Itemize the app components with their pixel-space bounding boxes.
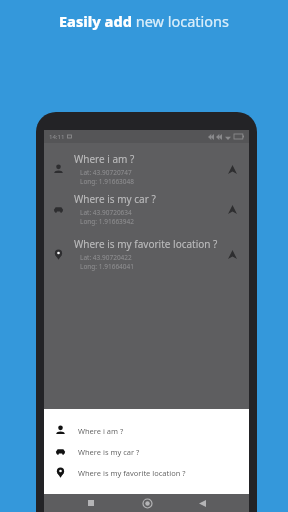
button[interactable]: Person (44, 149, 249, 189)
button[interactable]: Place (44, 229, 249, 279)
staticText: Long: 1.91663048 (80, 177, 134, 186)
other: Place (53, 249, 64, 260)
button[interactable]: Recent apps (83, 495, 99, 511)
button[interactable]: Where is my favorite location ? (44, 462, 249, 483)
staticText: Where is my favorite location ? (74, 237, 218, 251)
staticText: Lat: 43.90720422 (80, 253, 132, 262)
button[interactable]: Back (194, 495, 210, 511)
staticText: Where is my car ? (74, 192, 156, 206)
button[interactable]: Navigate (224, 246, 240, 262)
staticText: Where i am ? (74, 152, 135, 166)
staticText: Long: 1.91664041 (80, 262, 134, 271)
staticText: Lat: 43.90720634 (80, 208, 132, 217)
staticText: Where is my car ? (78, 447, 140, 457)
other: Person (53, 164, 64, 175)
button[interactable]: Navigate (224, 201, 240, 217)
staticText: Lat: 43.90720747 (80, 168, 132, 177)
button[interactable]: Where is my car ? (44, 441, 249, 462)
staticText: 14:11 (49, 133, 65, 141)
button[interactable]: Home (139, 495, 155, 511)
staticText: Where i am ? (78, 426, 124, 436)
other: Car (53, 204, 64, 215)
button[interactable]: Car (44, 189, 249, 229)
staticText: Easily add new locations (59, 11, 229, 31)
staticText: Where is my favorite location ? (78, 468, 186, 478)
button[interactable]: Where i am ? (44, 420, 249, 441)
staticText: Long: 1.91663942 (80, 217, 134, 226)
button[interactable]: Navigate (224, 161, 240, 177)
